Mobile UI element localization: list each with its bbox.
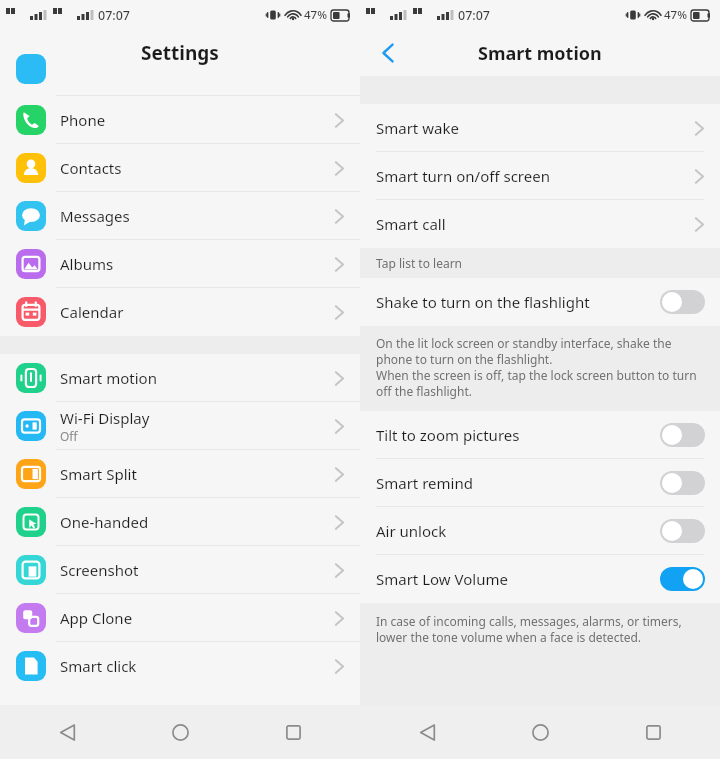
- staticText: Tilt to zoom pictures: [376, 425, 660, 445]
- staticText: Smart motion: [60, 368, 157, 388]
- staticText: Smart turn on/off screen: [376, 166, 695, 186]
- button[interactable]: Calendar: [0, 288, 360, 336]
- button[interactable]: Toggle off: [660, 471, 705, 495]
- staticText: Off: [60, 428, 78, 444]
- button[interactable]: Smart Split: [0, 450, 360, 498]
- staticText: Smart click: [60, 656, 137, 676]
- staticText: One-handed: [60, 512, 149, 532]
- button[interactable]: Back: [404, 709, 450, 755]
- button[interactable]: Home: [517, 709, 563, 755]
- button[interactable]: Smart turn on/off screen: [360, 152, 720, 200]
- button[interactable]: Smart wake: [360, 104, 720, 152]
- button[interactable]: Recents: [630, 709, 676, 755]
- button[interactable]: Contacts: [0, 144, 360, 192]
- button[interactable]: Smart motion: [0, 354, 360, 402]
- button[interactable]: Toggle off: [660, 519, 705, 543]
- staticText: Smart wake: [376, 118, 695, 138]
- button[interactable]: Wi-Fi Display: [0, 402, 360, 450]
- staticText: Settings: [141, 40, 219, 66]
- button[interactable]: Screenshot: [0, 546, 360, 594]
- staticText: Screenshot: [60, 560, 139, 580]
- staticText: 47%: [664, 7, 687, 23]
- button[interactable]: Toggle on: [660, 567, 705, 591]
- staticText: Smart call: [376, 214, 695, 234]
- staticText: Shake to turn on the flashlight: [376, 292, 660, 312]
- button[interactable]: Phone: [0, 96, 360, 144]
- staticText: In case of incoming calls, messages, ala…: [376, 613, 682, 645]
- button[interactable]: Messages: [0, 192, 360, 240]
- staticText: Messages: [60, 206, 130, 226]
- button[interactable]: Smart click: [0, 642, 360, 690]
- staticText: Tap list to learn: [376, 255, 463, 271]
- staticText: Smart Low Volume: [376, 569, 660, 589]
- button[interactable]: One-handed: [0, 498, 360, 546]
- button[interactable]: Smart remind: [360, 459, 720, 507]
- staticText: Wi-Fi Display: [60, 408, 150, 428]
- staticText: Albums: [60, 254, 114, 274]
- staticText: Phone: [60, 110, 106, 130]
- button[interactable]: Back: [44, 709, 90, 755]
- button[interactable]: Tilt to zoom pictures: [360, 411, 720, 459]
- staticText: Calendar: [60, 302, 124, 322]
- staticText: Smart remind: [376, 473, 660, 493]
- staticText: App Clone: [60, 608, 133, 628]
- button[interactable]: Toggle off: [660, 290, 705, 314]
- button[interactable]: Recents: [270, 709, 316, 755]
- button[interactable]: Toggle off: [660, 423, 705, 447]
- staticText: 07:07: [98, 7, 131, 24]
- button[interactable]: Smart call: [360, 200, 720, 248]
- button[interactable]: Albums: [0, 240, 360, 288]
- staticText: On the lit lock screen or standby interf…: [376, 335, 698, 399]
- staticText: 47%: [304, 7, 327, 23]
- button[interactable]: App Clone: [0, 594, 360, 642]
- staticText: 07:07: [458, 7, 491, 24]
- button[interactable]: Shake to turn on the flashlight: [360, 278, 720, 326]
- staticText: Air unlock: [376, 521, 660, 541]
- button[interactable]: Back: [368, 33, 408, 73]
- staticText: Smart Split: [60, 464, 137, 484]
- button[interactable]: Smart Low Volume: [360, 555, 720, 603]
- button[interactable]: Home: [157, 709, 203, 755]
- staticText: Contacts: [60, 158, 122, 178]
- button[interactable]: Air unlock: [360, 507, 720, 555]
- staticText: Smart motion: [478, 41, 602, 66]
